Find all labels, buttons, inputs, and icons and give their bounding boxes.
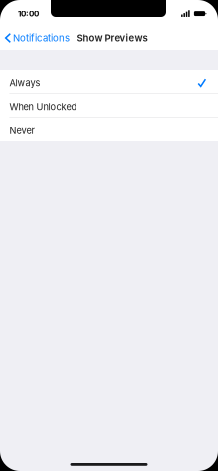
- button[interactable]: Notifications: [0, 32, 73, 44]
- button[interactable]: Never: [0, 118, 218, 141]
- button[interactable]: Always: [0, 70, 218, 94]
- staticText: Always: [9, 77, 40, 88]
- staticText: 10:00: [18, 9, 39, 18]
- staticText: Never: [9, 125, 34, 136]
- staticText: Show Previews: [76, 32, 147, 44]
- button[interactable]: When Unlocked: [0, 94, 218, 118]
- staticText: Notifications: [13, 32, 70, 44]
- staticText: When Unlocked: [9, 101, 77, 112]
